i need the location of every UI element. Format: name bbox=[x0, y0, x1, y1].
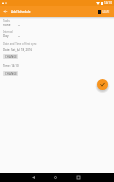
staticText: CHANGE bbox=[5, 72, 17, 76]
button[interactable]: Day bbox=[3, 34, 20, 38]
button[interactable]: CHANGE bbox=[3, 54, 18, 59]
button[interactable]: Back bbox=[0, 6, 11, 17]
button[interactable]: Back bbox=[29, 173, 38, 182]
button[interactable]: CHANGE bbox=[3, 71, 18, 76]
button[interactable]: SAVE bbox=[96, 9, 114, 15]
button[interactable]: Home bbox=[51, 173, 60, 182]
button[interactable]: none bbox=[3, 23, 20, 27]
staticText: none bbox=[3, 23, 11, 27]
staticText: 14:10 bbox=[104, 1, 112, 5]
staticText: Add Schedule bbox=[11, 10, 31, 14]
staticText: Date and Time of first sync bbox=[3, 42, 37, 46]
staticText: Time: 14:10 bbox=[3, 64, 19, 68]
staticText: Day bbox=[3, 34, 9, 38]
button[interactable]: Confirm bbox=[97, 79, 108, 90]
staticText: CHANGE bbox=[5, 55, 17, 59]
button[interactable]: Recents bbox=[74, 173, 83, 182]
staticText: SAVE bbox=[102, 10, 110, 14]
staticText: Interval bbox=[3, 30, 13, 34]
staticText: Date: Sat, Jul 18, 2016 bbox=[3, 48, 33, 52]
staticText: Tasks bbox=[3, 19, 10, 23]
